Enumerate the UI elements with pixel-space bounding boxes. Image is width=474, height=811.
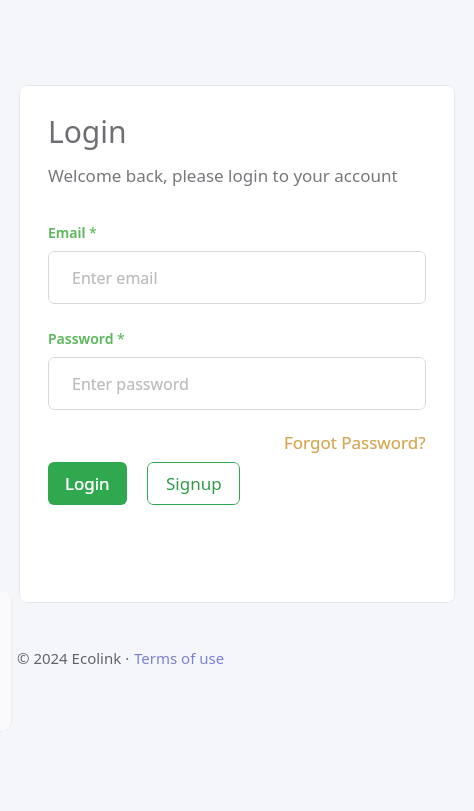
button[interactable]: Login	[48, 462, 127, 505]
staticText: Password *	[48, 329, 125, 348]
button[interactable]: Forgot Password?	[284, 431, 426, 454]
staticText: Enter email	[72, 267, 158, 289]
staticText: Signup	[166, 472, 222, 495]
staticText: Terms of use	[134, 648, 225, 668]
staticText: © 2024 Ecolink ·	[17, 648, 134, 668]
staticText: Email *	[48, 223, 97, 242]
staticText: Enter password	[72, 373, 189, 395]
button[interactable]: Signup	[147, 462, 240, 505]
staticText: Forgot Password?	[284, 431, 426, 454]
button[interactable]: Terms of use	[134, 648, 225, 668]
staticText: Login	[48, 111, 127, 152]
button[interactable]: Enter email	[48, 251, 426, 304]
staticText: Login	[65, 472, 110, 495]
staticText: Welcome back, please login to your accou…	[48, 164, 398, 187]
button[interactable]: Enter password	[48, 357, 426, 410]
